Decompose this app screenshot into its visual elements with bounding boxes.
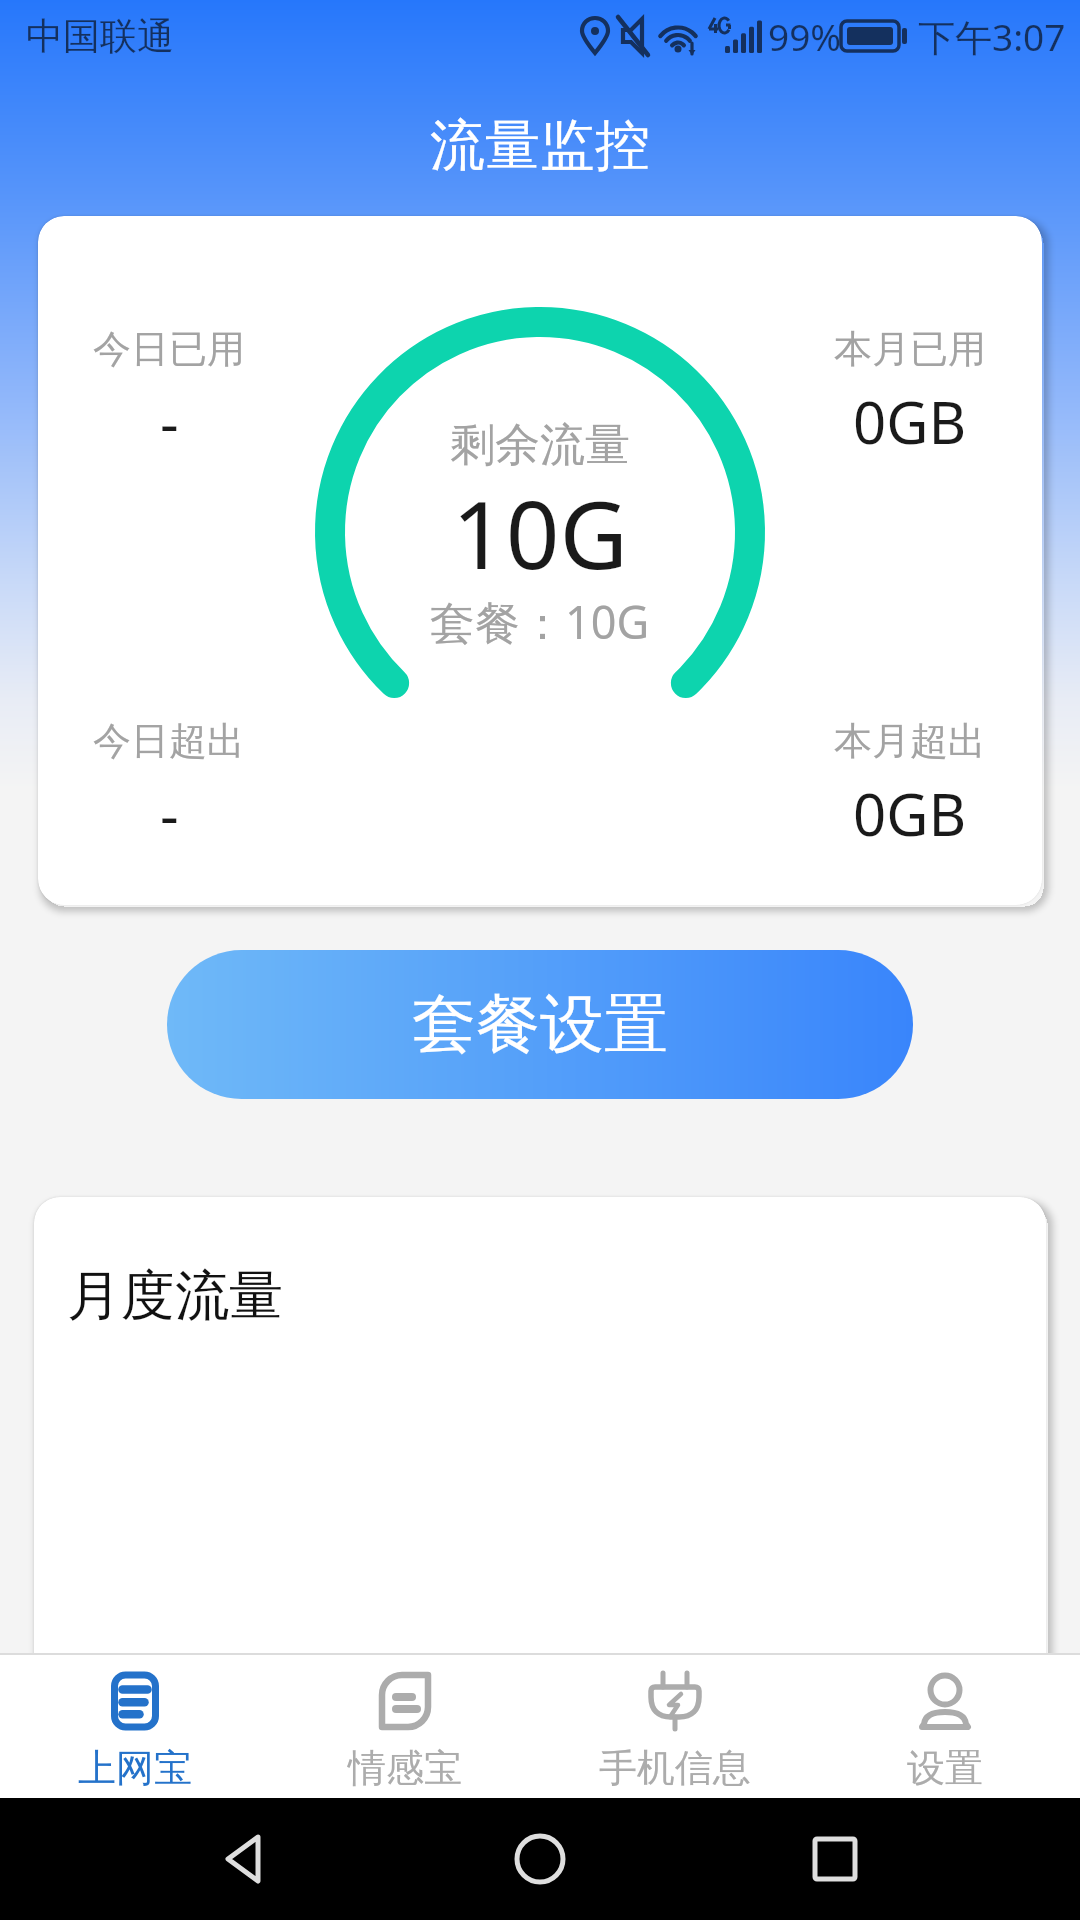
staticText: - — [160, 774, 179, 853]
staticText: 10G — [452, 469, 628, 597]
staticText: 今日超出 — [93, 717, 245, 765]
staticText: 0GB — [853, 774, 967, 853]
staticText: 今日已用 — [93, 325, 245, 373]
staticText: 月度流量 — [67, 1262, 283, 1330]
staticText: - — [160, 382, 179, 461]
staticText: 0GB — [853, 382, 967, 461]
button[interactable]: Back — [195, 1809, 295, 1909]
staticText: 下午3:07 — [918, 11, 1066, 62]
button[interactable]: 手机信息 — [540, 1653, 810, 1798]
staticText: 情感宝 — [348, 1744, 462, 1792]
staticText: 设置 — [907, 1744, 983, 1792]
button[interactable]: 套餐设置 — [167, 950, 913, 1099]
button[interactable]: 设置 — [810, 1653, 1080, 1798]
button[interactable]: 情感宝 — [270, 1653, 540, 1798]
staticText: 99% — [768, 11, 842, 61]
staticText: 手机信息 — [599, 1744, 751, 1792]
staticText: 套餐：10G — [430, 591, 650, 652]
button[interactable]: Home — [490, 1809, 590, 1909]
staticText: 本月已用 — [834, 325, 986, 373]
button[interactable]: 上网宝 — [0, 1653, 270, 1798]
button[interactable]: Recent apps — [785, 1809, 885, 1909]
staticText: 本月超出 — [834, 717, 986, 765]
staticText: 流量监控 — [430, 111, 650, 180]
staticText: 剩余流量 — [450, 417, 630, 474]
staticText: 套餐设置 — [412, 984, 668, 1065]
staticText: 中国联通 — [26, 13, 174, 60]
staticText: 上网宝 — [78, 1744, 192, 1792]
